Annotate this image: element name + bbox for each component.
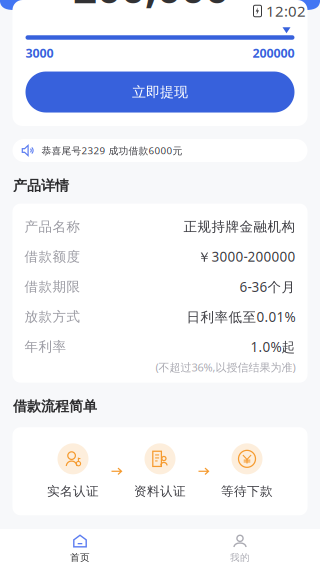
staticText: 200000	[252, 44, 294, 61]
staticText: 12:02	[266, 1, 306, 21]
button[interactable]: 首页	[0, 529, 160, 569]
staticText: 年利率	[24, 338, 66, 355]
staticText: 正规持牌金融机构	[183, 218, 295, 235]
staticText: 借款流程简单	[13, 398, 97, 415]
staticText: 1.0%起	[250, 337, 295, 356]
staticText: 放款方式	[24, 308, 80, 325]
staticText: 等待下款	[221, 483, 273, 499]
staticText: 200,000	[73, 0, 229, 16]
button[interactable]: 立即提现	[25, 71, 294, 112]
staticText: (不超过36%,以授信结果为准)	[155, 360, 295, 375]
button[interactable]: 我的	[160, 529, 320, 569]
staticText: 立即提现	[132, 83, 188, 101]
staticText: 实名认证	[47, 483, 99, 499]
staticText: 借款额度	[24, 248, 80, 265]
staticText: 资料认证	[134, 483, 186, 499]
staticText: ￥3000-200000	[197, 247, 295, 266]
staticText: 我的	[230, 551, 250, 564]
staticText: 首页	[70, 551, 90, 564]
staticText: 恭喜尾号2329 成功借款6000元	[41, 144, 182, 157]
staticText: 6-36个月	[239, 277, 295, 296]
staticText: 3000	[25, 44, 53, 61]
staticText: 产品名称	[24, 218, 80, 235]
staticText: 日利率低至0.01%	[186, 307, 295, 326]
staticText: 产品详情	[13, 177, 69, 195]
staticText: 借款期限	[24, 278, 80, 295]
